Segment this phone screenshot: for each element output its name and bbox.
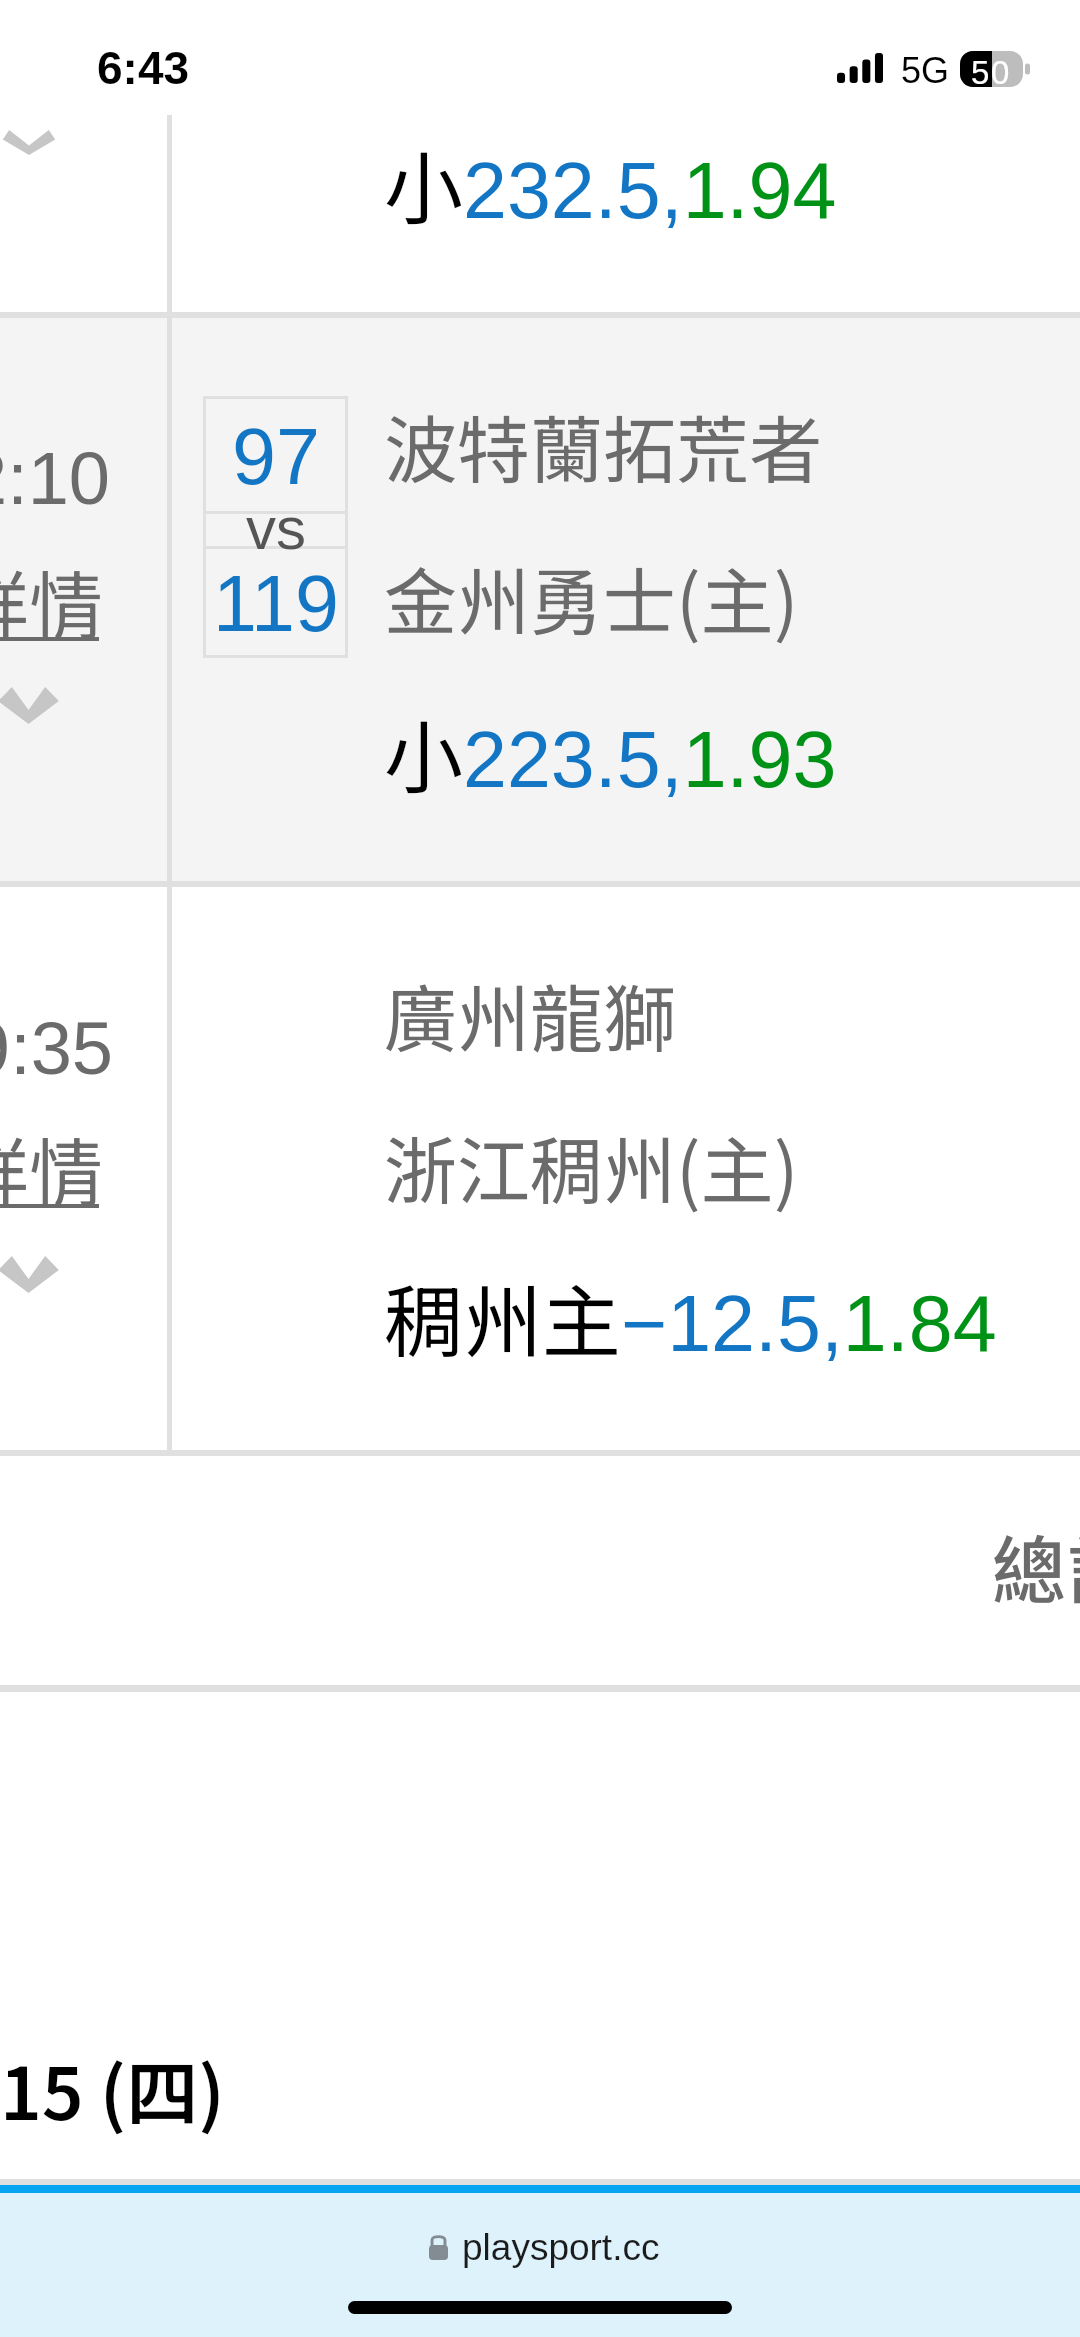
button[interactable]: Expand row xyxy=(5,1256,52,1293)
button[interactable] xyxy=(0,318,1080,881)
staticText: 小232.5,1.94 xyxy=(384,126,837,240)
staticText: 0 xyxy=(991,54,1010,90)
other: Cellular signal xyxy=(837,53,883,83)
staticText: 稠州主−12.5,1.84 xyxy=(384,1259,997,1373)
staticText: 詳情 xyxy=(0,1114,103,1209)
button[interactable]: 詳情 xyxy=(0,547,115,642)
staticText: 廣州龍獅 xyxy=(384,961,676,1067)
staticText: 詳情 xyxy=(0,547,103,642)
staticText: playsport.cc xyxy=(462,2227,660,2268)
staticText: 5G xyxy=(901,50,950,90)
staticText: 119 xyxy=(213,559,339,647)
staticText: 金州勇士(主) xyxy=(384,544,799,650)
button[interactable] xyxy=(0,115,1080,312)
button[interactable]: Expand row xyxy=(6,130,52,155)
staticText: 總計 xyxy=(992,1512,1080,1619)
other: Secure connection xyxy=(429,2234,448,2260)
staticText: 浙江稠州(主) xyxy=(384,1113,799,1219)
staticText: 97 xyxy=(232,412,320,500)
staticText: 9:35 xyxy=(0,1007,114,1090)
button[interactable]: Expand row xyxy=(5,687,52,724)
other: Battery 50 percent xyxy=(960,51,1029,87)
staticText: 波特蘭拓荒者 xyxy=(384,392,822,498)
staticText: 6:43 xyxy=(97,42,190,93)
staticText: vs xyxy=(246,495,306,562)
staticText: 小223.5,1.93 xyxy=(384,695,837,809)
button[interactable]: 詳情 xyxy=(0,1114,115,1209)
button[interactable] xyxy=(0,887,1080,1450)
staticText: 2:10 xyxy=(0,437,111,520)
staticText: 15 (四) xyxy=(0,2036,225,2140)
staticText: 5 xyxy=(971,54,990,90)
button[interactable] xyxy=(0,2193,1080,2337)
button[interactable]: 97 xyxy=(203,396,348,658)
